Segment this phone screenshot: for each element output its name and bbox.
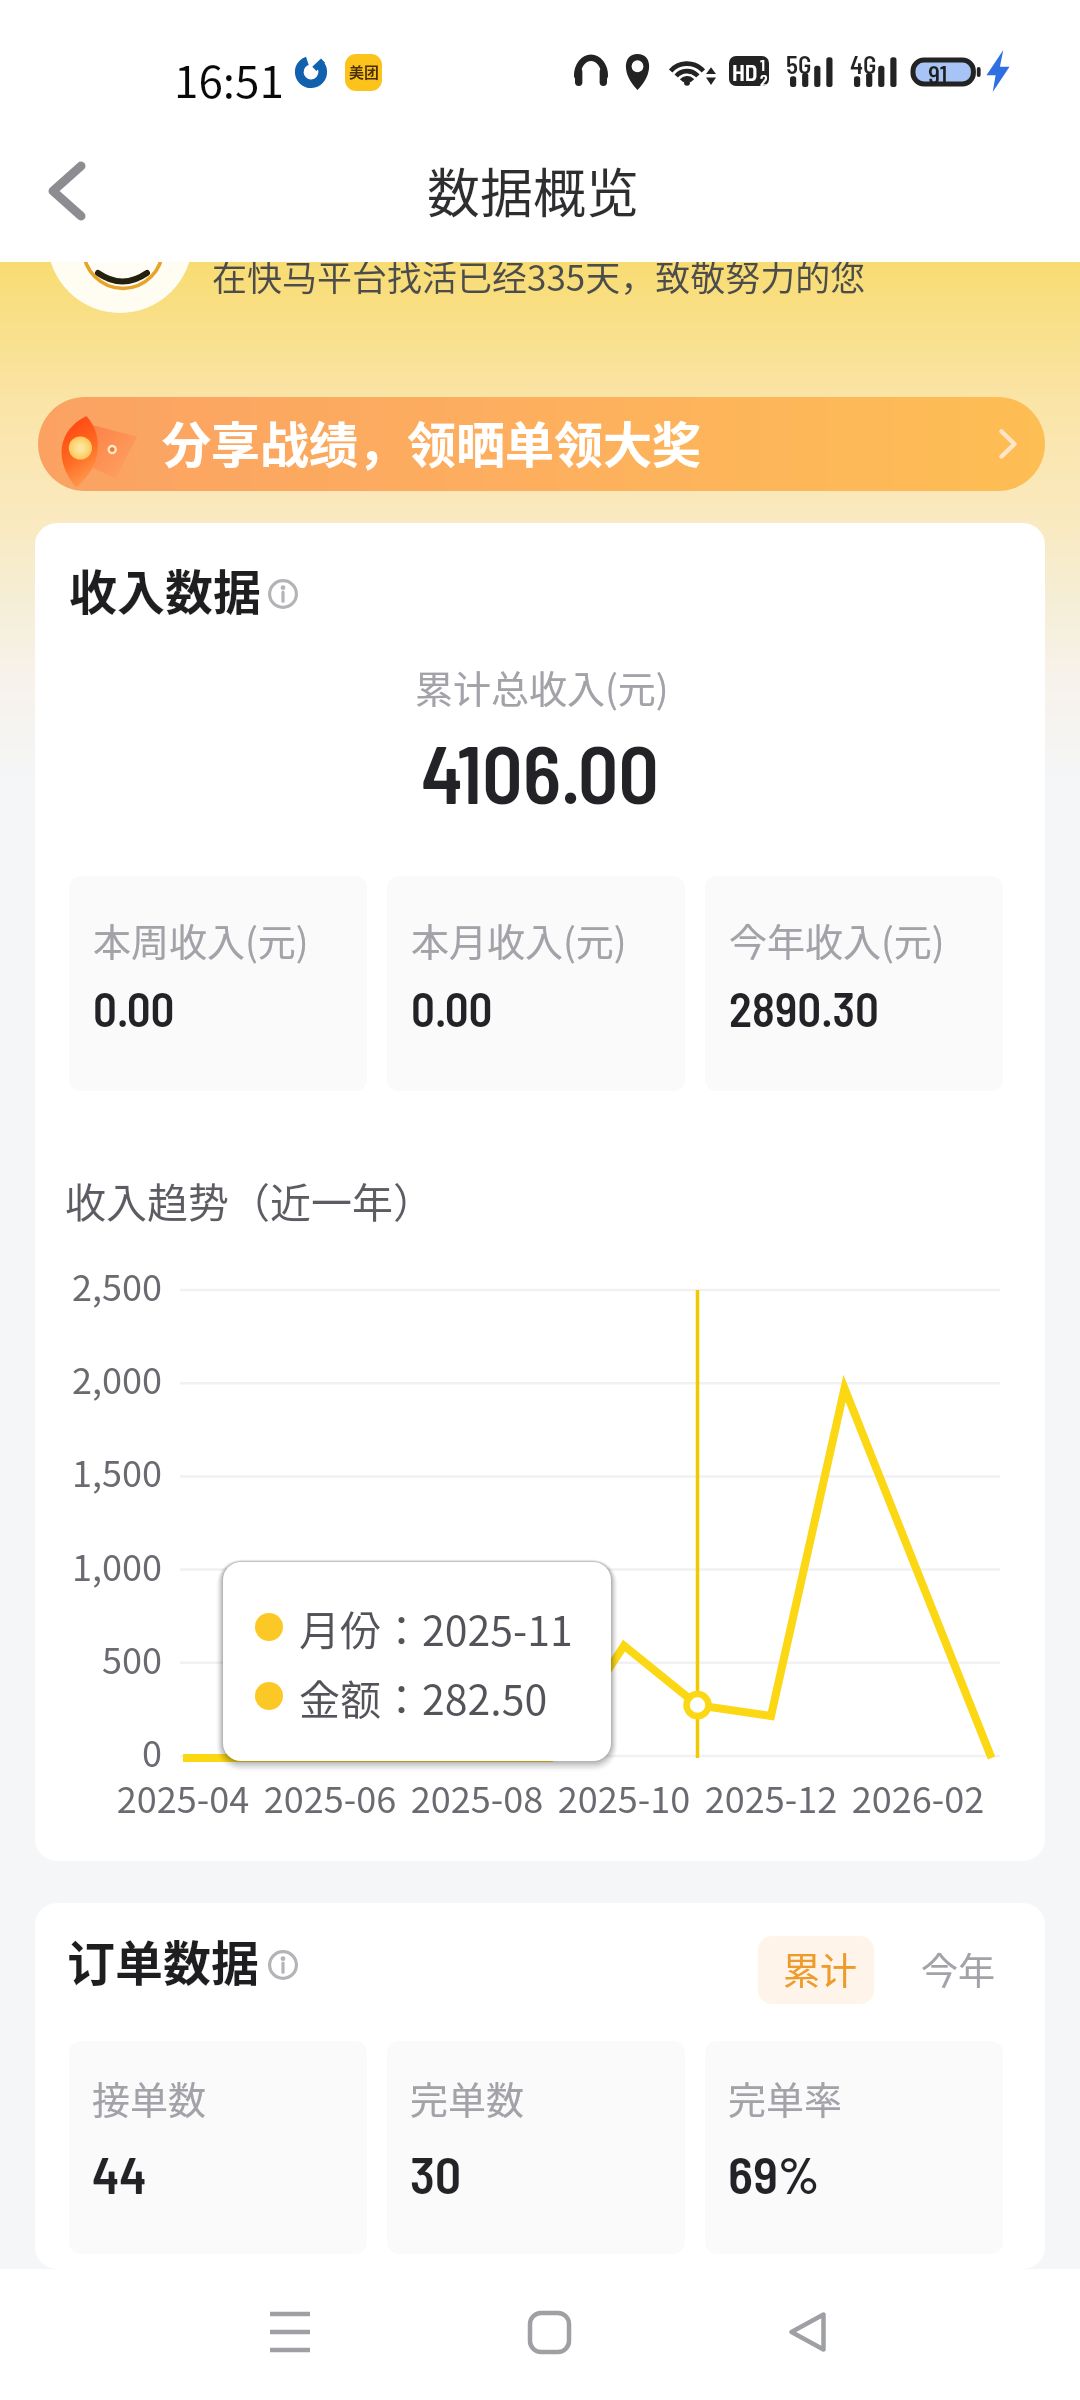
staticText: 今年收入(元) (729, 912, 945, 967)
staticText: 金额：282.50 (299, 1667, 548, 1726)
button[interactable]: 累计 (758, 1936, 874, 2004)
staticText: 2 (760, 70, 768, 86)
button[interactable]: Back (19, 143, 115, 239)
button[interactable]: 完单率 (705, 2041, 1003, 2254)
staticText: 1,000 (35, 1539, 162, 1591)
staticText: 4G (850, 49, 877, 79)
button[interactable]: 今年 (895, 1936, 1011, 2004)
staticText: 4106.00 (421, 724, 660, 820)
staticText: 收入数据 (69, 554, 262, 624)
staticText: 完单数 (410, 2070, 525, 2125)
staticText: 订单数据 (67, 1925, 260, 1995)
staticText: 2,500 (35, 1259, 162, 1311)
button[interactable]: Home (489, 2272, 609, 2392)
staticText: 0.00 (411, 980, 493, 1036)
staticText: 91 (928, 59, 948, 87)
staticText: 2026-02 (838, 1771, 998, 1823)
button[interactable]: 分享战绩，领晒单领大奖 (38, 397, 1045, 491)
staticText: 本月收入(元) (411, 912, 627, 967)
staticText: 月份：2025-11 (299, 1598, 573, 1657)
staticText: 2025-12 (691, 1771, 851, 1823)
staticText: 今年 (921, 1942, 995, 1996)
staticText: 44 (92, 2142, 147, 2204)
staticText: 本周收入(元) (93, 912, 309, 967)
staticText: 0.00 (93, 980, 175, 1036)
staticText: 1,500 (35, 1445, 162, 1497)
button[interactable]: 完单数 (387, 2041, 685, 2254)
staticText: 2025-08 (397, 1771, 557, 1823)
staticText: 69% (728, 2142, 820, 2204)
staticText: 接单数 (92, 2070, 207, 2125)
staticText: 美团 (349, 61, 380, 83)
staticText: 分享战绩，领晒单领大奖 (162, 406, 702, 477)
staticText: 收入趋势（近一年） (65, 1170, 434, 1229)
button[interactable]: 本月收入(元) (387, 876, 685, 1091)
staticText: 500 (35, 1632, 162, 1684)
button[interactable]: 本周收入(元) (69, 876, 367, 1091)
staticText: 2890.30 (729, 980, 879, 1036)
button[interactable]: 接单数 (69, 2041, 367, 2254)
staticText: 2,000 (35, 1352, 162, 1404)
staticText: 2025-06 (250, 1771, 410, 1823)
button[interactable]: Recent apps (230, 2272, 350, 2392)
staticText: HD (732, 58, 758, 86)
staticText: 5G (786, 49, 812, 79)
staticText: 2025-04 (103, 1771, 263, 1823)
staticText: 累计总收入(元) (415, 659, 669, 714)
staticText: 数据概览 (427, 152, 639, 229)
staticText: 30 (410, 2142, 462, 2204)
button[interactable]: 今年收入(元) (705, 876, 1003, 1091)
button[interactable]: Back (747, 2272, 867, 2392)
staticText: 累计 (783, 1942, 857, 1996)
staticText: 16:51 (174, 47, 284, 111)
staticText: 1 (760, 56, 766, 74)
staticText: 在快马平台找活已经335天，致敬努力的您 (212, 250, 866, 301)
staticText: 0 (35, 1725, 162, 1777)
staticText: 完单率 (728, 2070, 843, 2125)
staticText: 2025-10 (544, 1771, 704, 1823)
